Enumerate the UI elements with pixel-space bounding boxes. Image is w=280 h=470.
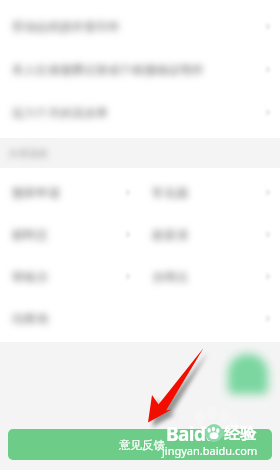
staticText: 预审申请	[12, 185, 60, 200]
staticText: 结果询	[12, 311, 48, 326]
button[interactable]: 材料交	[0, 213, 140, 255]
button[interactable]: 劳动合同原件复印件	[0, 5, 280, 48]
button[interactable]: 常见题	[140, 171, 280, 213]
staticText: 近六个月的流水单	[12, 105, 108, 120]
staticText: 劳动合同原件复印件	[12, 19, 120, 34]
staticText: 意见反馈	[119, 438, 165, 452]
staticText: jingyan.baidu.com	[162, 443, 258, 458]
staticText: 常见题	[152, 185, 188, 200]
button[interactable]: 近六个月的流水单	[0, 91, 280, 134]
staticText: 办理流程	[8, 147, 48, 160]
button[interactable]: 办理点	[140, 255, 280, 297]
button[interactable]: 本人社保缴费记录或个税缴纳证明件	[0, 48, 280, 91]
staticText: 审核示	[12, 269, 48, 284]
button[interactable]: 审核示	[0, 255, 140, 297]
staticText: 办理点	[152, 269, 188, 284]
button[interactable]: 预审申请	[0, 171, 140, 213]
button[interactable]: 意见反馈	[8, 429, 272, 460]
button[interactable]: 结果询	[0, 297, 140, 339]
staticText: 本人社保缴费记录或个税缴纳证明件	[12, 62, 204, 77]
button[interactable]: Customer service chat	[228, 354, 268, 394]
staticText: 政策读	[152, 227, 188, 242]
staticText: Baidu	[166, 421, 218, 447]
staticText: 经验	[224, 424, 256, 444]
staticText: 材料交	[12, 227, 48, 242]
button[interactable]: 政策读	[140, 213, 280, 255]
